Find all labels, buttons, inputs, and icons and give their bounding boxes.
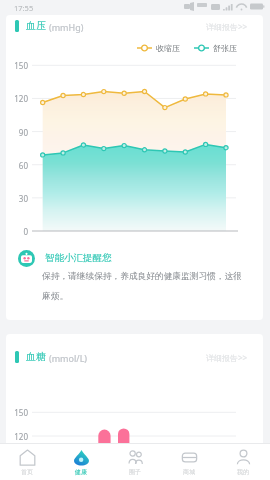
staticText: 150 bbox=[6, 60, 28, 71]
staticText: 血压 bbox=[26, 19, 46, 32]
staticText: (mmHg) bbox=[49, 21, 84, 33]
staticText: 血糖 bbox=[26, 350, 46, 363]
button[interactable]: 详细报告>> bbox=[204, 352, 250, 363]
staticText: 舒张压 bbox=[213, 43, 237, 53]
staticText: 详细报告>> bbox=[206, 21, 248, 32]
button[interactable]: 健康 bbox=[54, 444, 108, 480]
staticText: 保持，请继续保持，养成良好的健康监测习惯，这很 麻烦。 bbox=[42, 271, 242, 301]
staticText: 详细报告>> bbox=[206, 352, 248, 363]
staticText: 我的 bbox=[237, 468, 249, 476]
staticText: 收缩压 bbox=[156, 43, 180, 53]
staticText: 90 bbox=[6, 127, 28, 138]
staticText: 健康 bbox=[75, 468, 87, 476]
staticText: 150 bbox=[6, 407, 28, 418]
staticText: (mmol/L) bbox=[49, 352, 88, 364]
button[interactable]: 商城 bbox=[162, 444, 216, 480]
staticText: 商城 bbox=[183, 468, 195, 476]
staticText: 首页 bbox=[21, 468, 33, 476]
staticText: 30 bbox=[6, 193, 28, 204]
staticText: 17:55 bbox=[14, 3, 34, 13]
button[interactable]: 圈子 bbox=[108, 444, 162, 480]
staticText: 120 bbox=[6, 93, 28, 104]
button[interactable]: 我的 bbox=[216, 444, 270, 480]
staticText: 0 bbox=[6, 226, 28, 237]
button[interactable]: 首页 bbox=[0, 444, 54, 480]
staticText: 智能小汇提醒您 bbox=[45, 252, 112, 264]
staticText: 120 bbox=[6, 431, 28, 442]
staticText: 圈子 bbox=[129, 468, 141, 476]
button[interactable]: 详细报告>> bbox=[204, 21, 250, 32]
staticText: 60 bbox=[6, 160, 28, 171]
